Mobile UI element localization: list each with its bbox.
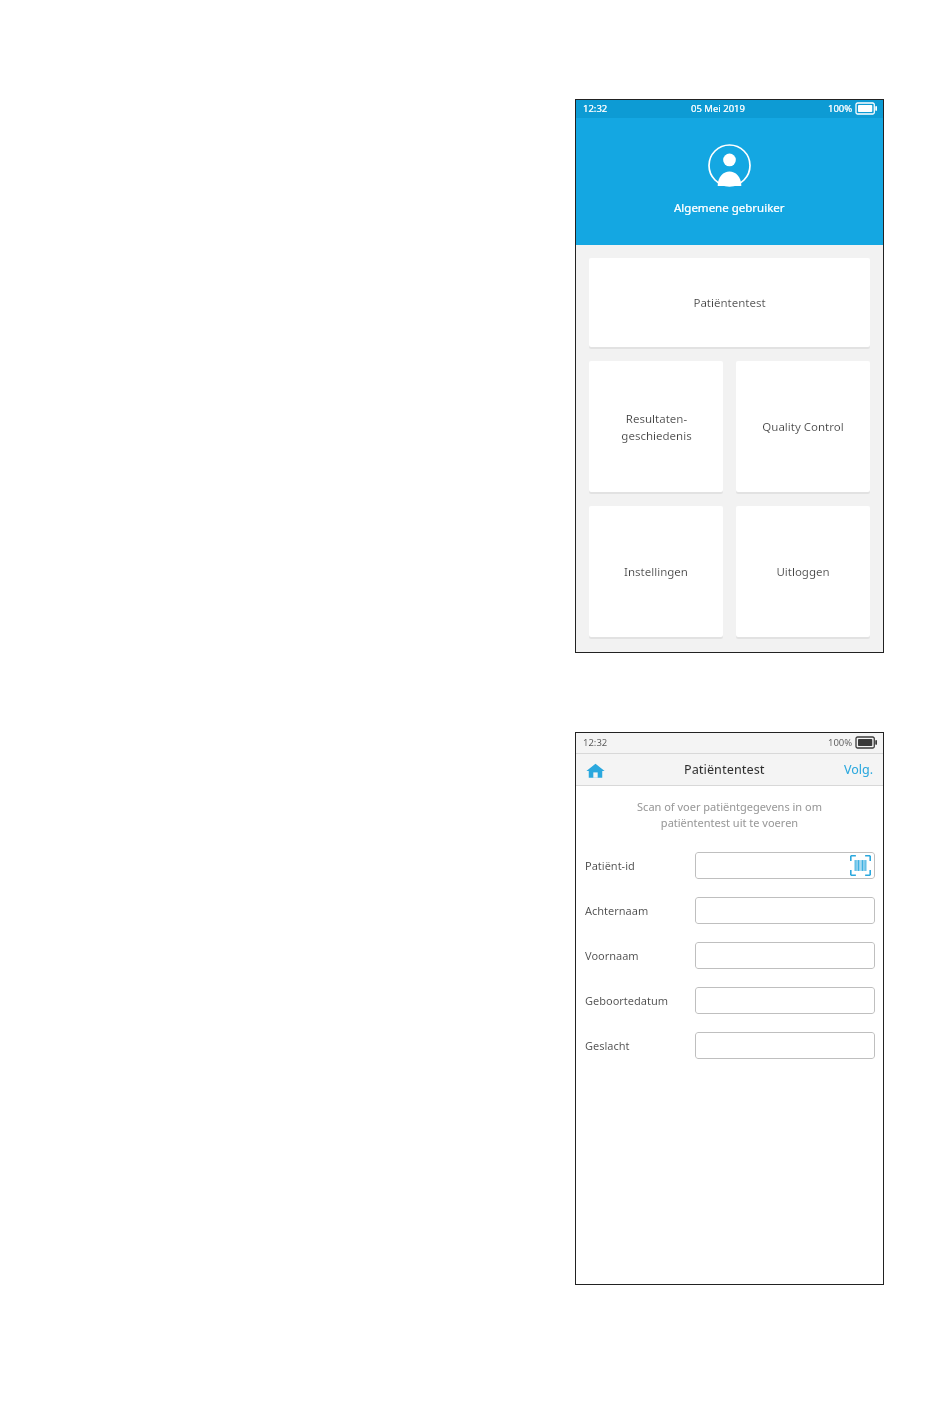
button[interactable] <box>695 942 875 969</box>
staticText: Volg. <box>844 761 874 778</box>
staticText: Voornaam <box>585 948 639 963</box>
staticText: 12:32 <box>583 102 608 115</box>
staticText: Geslacht <box>585 1038 630 1053</box>
staticText: 100% <box>828 102 853 115</box>
button[interactable]: Quality Control <box>736 361 870 492</box>
staticText: 12:32 <box>583 736 608 749</box>
button[interactable]: Scan barcode <box>695 852 875 879</box>
staticText: Patiënt-id <box>585 858 635 873</box>
button[interactable]: Volg. <box>842 757 876 782</box>
staticText: Quality Control <box>762 419 844 435</box>
staticText: Resultaten- geschiedenis <box>621 411 692 443</box>
staticText: Algemene gebruiker <box>674 200 785 216</box>
button[interactable] <box>695 987 875 1014</box>
staticText: Uitloggen <box>776 564 830 580</box>
button[interactable]: Home <box>582 757 608 783</box>
staticText: Patiëntentest <box>684 761 765 778</box>
button[interactable]: Patiëntentest <box>589 258 870 347</box>
staticText: Scan of voer patiëntgegevens in om patië… <box>593 799 866 831</box>
staticText: 05 Mei 2019 <box>691 102 745 115</box>
button[interactable] <box>695 897 875 924</box>
button[interactable]: Uitloggen <box>736 506 870 637</box>
button[interactable] <box>695 1032 875 1059</box>
staticText: Geboortedatum <box>585 993 668 1008</box>
staticText: Instellingen <box>624 564 688 580</box>
staticText: Patiëntentest <box>693 295 766 311</box>
button[interactable]: Instellingen <box>589 506 723 637</box>
button[interactable]: Resultaten- geschiedenis <box>589 361 723 492</box>
staticText: Achternaam <box>585 903 649 918</box>
staticText: 100% <box>828 736 853 749</box>
button[interactable]: Scan barcode <box>850 855 871 876</box>
